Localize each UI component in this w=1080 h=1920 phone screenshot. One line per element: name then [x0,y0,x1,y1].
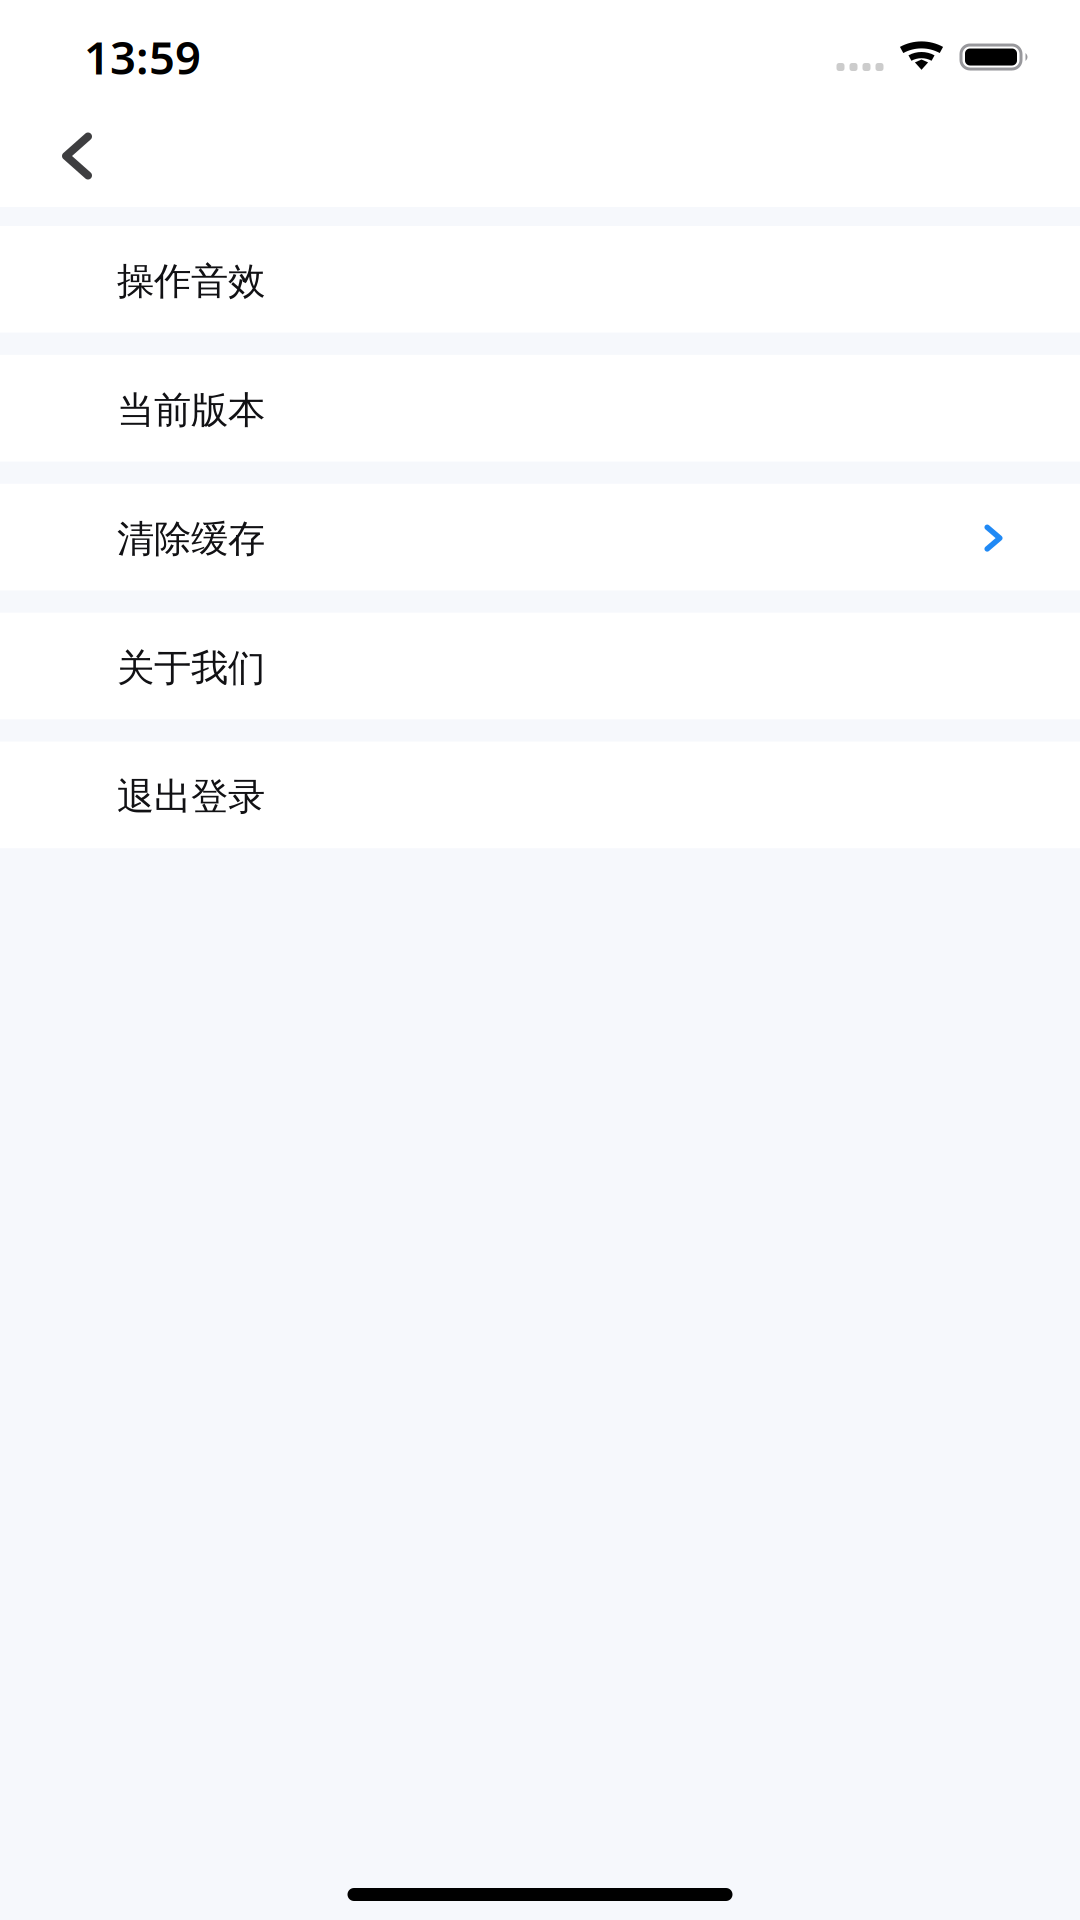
button[interactable]: 清除缓存 [0,484,1080,590]
button[interactable]: Back [29,100,125,207]
button[interactable]: 退出登录 [0,742,1080,848]
staticText: 13:59 [84,27,201,87]
staticText: 当前版本 [117,387,265,433]
button[interactable]: 关于我们 [0,613,1080,719]
staticText: 清除缓存 [117,516,265,562]
staticText: 操作音效 [117,258,265,304]
staticText: 关于我们 [117,645,265,691]
button[interactable]: 当前版本 [0,355,1080,461]
staticText: 退出登录 [117,774,265,820]
button[interactable]: 操作音效 [0,226,1080,333]
